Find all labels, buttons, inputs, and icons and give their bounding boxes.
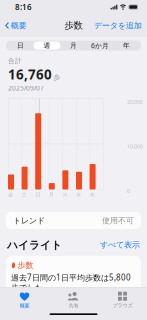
staticText: 8:16 (15, 2, 32, 12)
staticText: 6か月 (91, 41, 109, 50)
staticText: 10,000 (127, 143, 143, 150)
button[interactable]: すべて表示 (100, 238, 140, 252)
staticText: 使用不可 (102, 216, 134, 225)
button[interactable]: ブラウズ (98, 291, 147, 310)
staticText: 水 (76, 191, 81, 198)
button[interactable]: 週 (34, 42, 60, 50)
staticText: 16,760 (8, 65, 52, 83)
staticText: すべて表示 (100, 240, 140, 250)
staticText: 木 (90, 191, 95, 198)
staticText: 概要 (11, 21, 27, 30)
staticText: 週 (43, 41, 50, 50)
staticText: 金 (8, 191, 13, 198)
button[interactable]: 歩数 (6, 256, 141, 297)
staticText: 歩 (53, 73, 60, 81)
staticText: ハイライト (7, 239, 62, 252)
button[interactable]: 6か月 (87, 42, 113, 50)
staticText: 0 (127, 187, 130, 194)
button[interactable]: 年 (113, 42, 140, 50)
button[interactable]: 概要 (0, 290, 49, 310)
staticText: 20,000 (127, 98, 143, 105)
staticText: 歩数 (17, 260, 33, 270)
staticText: 概要 (19, 302, 29, 309)
staticText: 年 (123, 41, 130, 50)
staticText: データを追加 (94, 21, 142, 30)
staticText: 火 (62, 191, 67, 198)
staticText: 月 (70, 41, 77, 50)
staticText: 歩数 (64, 20, 82, 31)
staticText: 2025/09/07 (8, 84, 44, 92)
button[interactable]: データを追加 (94, 17, 147, 34)
button[interactable]: 共有 (49, 290, 98, 310)
staticText: 土 (22, 191, 27, 198)
staticText: 日 (35, 191, 40, 198)
staticText: トレンド (13, 216, 45, 225)
button[interactable]: トレンド (6, 212, 141, 229)
staticText: 月 (49, 191, 54, 198)
staticText: ブラウズ (112, 302, 132, 309)
button[interactable]: 概要 (0, 17, 27, 34)
staticText: 日 (17, 41, 24, 50)
staticText: 合計 (8, 57, 22, 65)
staticText: 過去7日間の1日平均歩数は5,800歩でした。 (11, 272, 131, 293)
button[interactable]: 月 (60, 42, 87, 50)
button[interactable]: 日 (7, 42, 34, 50)
staticText: 共有 (68, 302, 78, 309)
